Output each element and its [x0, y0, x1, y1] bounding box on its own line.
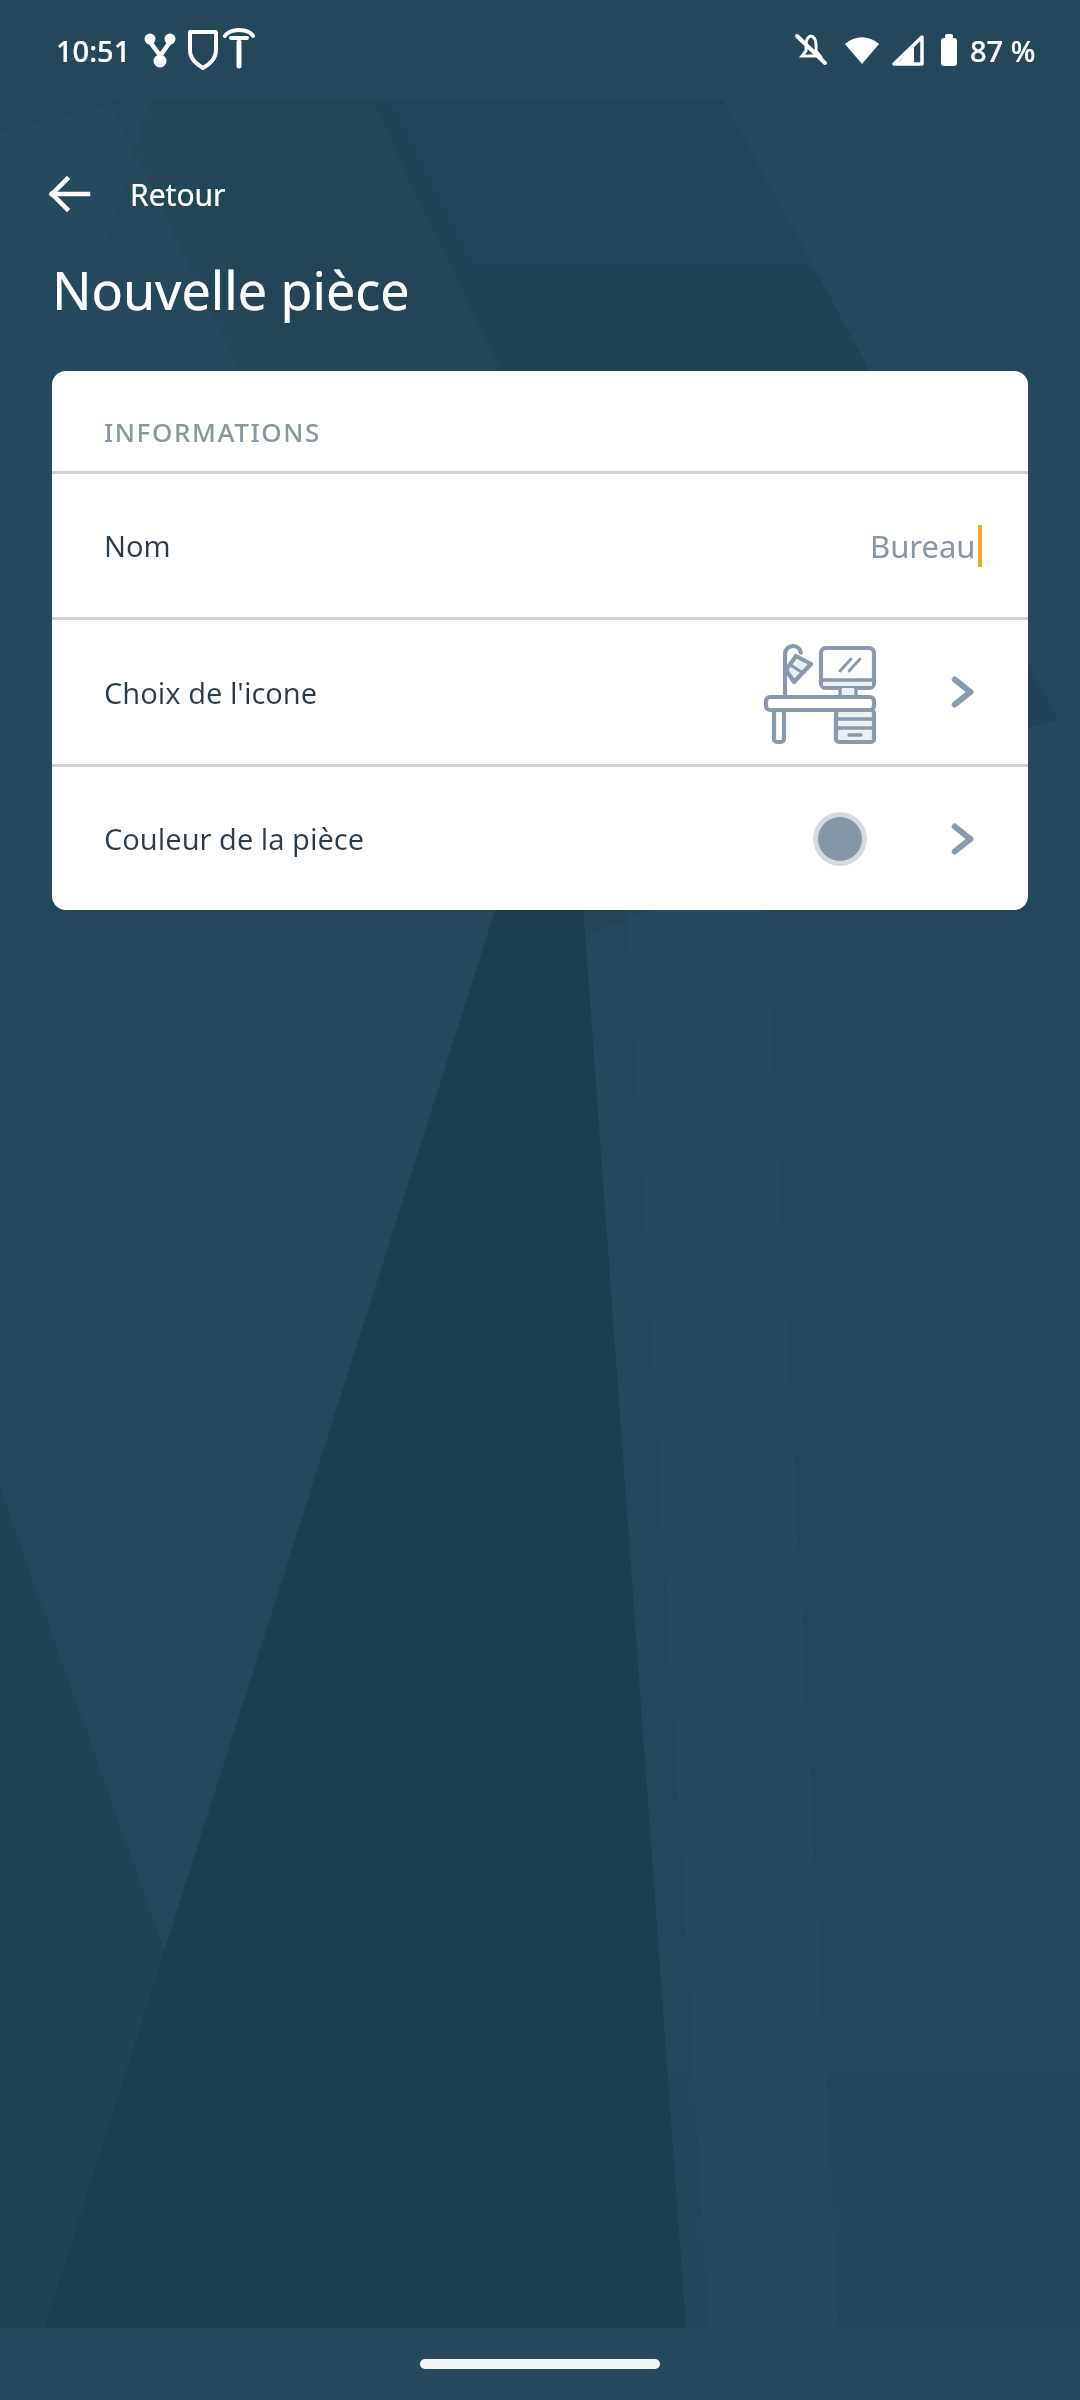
other: Ouvrir	[936, 813, 988, 865]
staticText: Nouvelle pièce	[52, 254, 410, 325]
button[interactable]: Choix de l'icone	[52, 620, 1028, 764]
staticText: 10:51	[56, 31, 131, 70]
other: Retour	[48, 172, 92, 216]
staticText: Choix de l'icone	[104, 673, 318, 712]
button[interactable]: Couleur de la pièce	[52, 767, 1028, 910]
staticText: Bureau	[870, 525, 976, 567]
staticText: Nom	[104, 526, 171, 565]
staticText: Retour	[130, 174, 226, 215]
staticText: Couleur de la pièce	[104, 819, 365, 858]
button[interactable]: Nom	[52, 474, 1028, 617]
staticText: 87 %	[970, 31, 1036, 70]
other: Ouvrir	[936, 666, 988, 718]
button[interactable]: Retour	[36, 162, 238, 226]
staticText: INFORMATIONS	[104, 414, 321, 449]
